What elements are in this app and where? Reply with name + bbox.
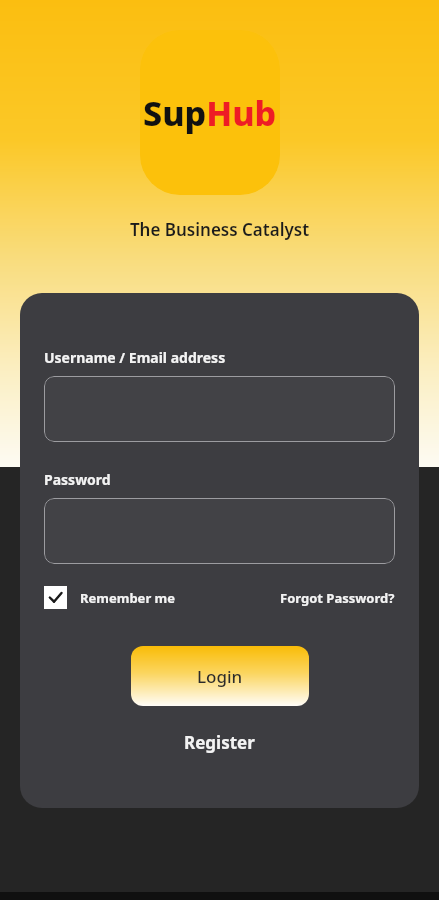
staticText: Password xyxy=(44,470,111,489)
staticText: Remember me xyxy=(80,589,176,607)
button[interactable] xyxy=(44,376,395,442)
button[interactable]: Remember me xyxy=(44,586,176,609)
button[interactable]: Forgot Password? xyxy=(280,589,395,607)
button[interactable]: Login xyxy=(131,646,309,706)
button[interactable]: Register xyxy=(184,731,255,754)
staticText: Username / Email address xyxy=(44,348,226,367)
button[interactable] xyxy=(44,498,395,564)
staticText: Forgot Password? xyxy=(280,589,395,607)
staticText: The Business Catalyst xyxy=(0,218,439,241)
staticText: Register xyxy=(184,731,255,754)
staticText: SupHub xyxy=(143,90,277,136)
staticText: Login xyxy=(197,665,243,688)
